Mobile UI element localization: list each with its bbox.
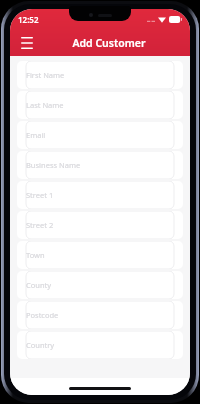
- staticText: Postcode: [26, 310, 59, 320]
- staticText: Street 2: [26, 220, 54, 230]
- staticText: Email: [26, 130, 46, 140]
- staticText: First Name: [26, 70, 65, 80]
- staticText: Street 1: [26, 190, 54, 200]
- button[interactable]: County: [17, 271, 183, 299]
- staticText: Last Name: [26, 100, 64, 110]
- staticText: Country: [26, 340, 55, 350]
- staticText: Add Customer: [72, 36, 146, 50]
- staticText: 12:52: [18, 14, 39, 25]
- button[interactable]: Street 1: [17, 181, 183, 209]
- button[interactable]: Street 2: [17, 211, 183, 239]
- button[interactable]: Email: [17, 121, 183, 149]
- button[interactable]: Country: [17, 331, 183, 359]
- staticText: County: [26, 280, 52, 290]
- staticText: Business Name: [26, 160, 81, 170]
- button[interactable]: Open navigation menu: [16, 32, 38, 54]
- button[interactable]: First Name: [17, 61, 183, 89]
- button[interactable]: Last Name: [17, 91, 183, 119]
- button[interactable]: Business Name: [17, 151, 183, 179]
- staticText: Town: [26, 250, 45, 260]
- button[interactable]: Town: [17, 241, 183, 269]
- button[interactable]: Postcode: [17, 301, 183, 329]
